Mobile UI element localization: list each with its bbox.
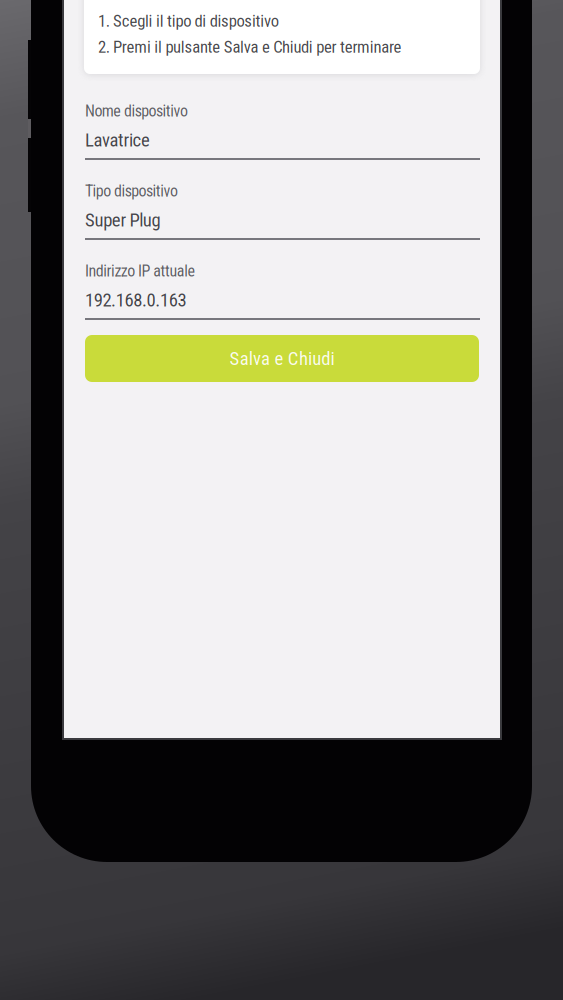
staticText: Lavatrice: [85, 129, 150, 151]
staticText: Salva e Chiudi: [229, 348, 334, 369]
button[interactable]: Indirizzo IP attuale: [85, 263, 480, 320]
staticText: Nome dispositivo: [85, 102, 188, 120]
staticText: 2. Premi il pulsante Salva e Chiudi per …: [98, 37, 402, 57]
staticText: 1. Scegli il tipo di dispositivo: [98, 11, 279, 31]
button[interactable]: Tipo dispositivo: [85, 183, 480, 240]
staticText: Indirizzo IP attuale: [85, 262, 196, 280]
staticText: 192.168.0.163: [85, 289, 186, 311]
staticText: Super Plug: [85, 209, 160, 231]
staticText: Tipo dispositivo: [85, 182, 178, 200]
button[interactable]: Salva e Chiudi: [85, 335, 479, 382]
button[interactable]: Nome dispositivo: [85, 103, 480, 160]
